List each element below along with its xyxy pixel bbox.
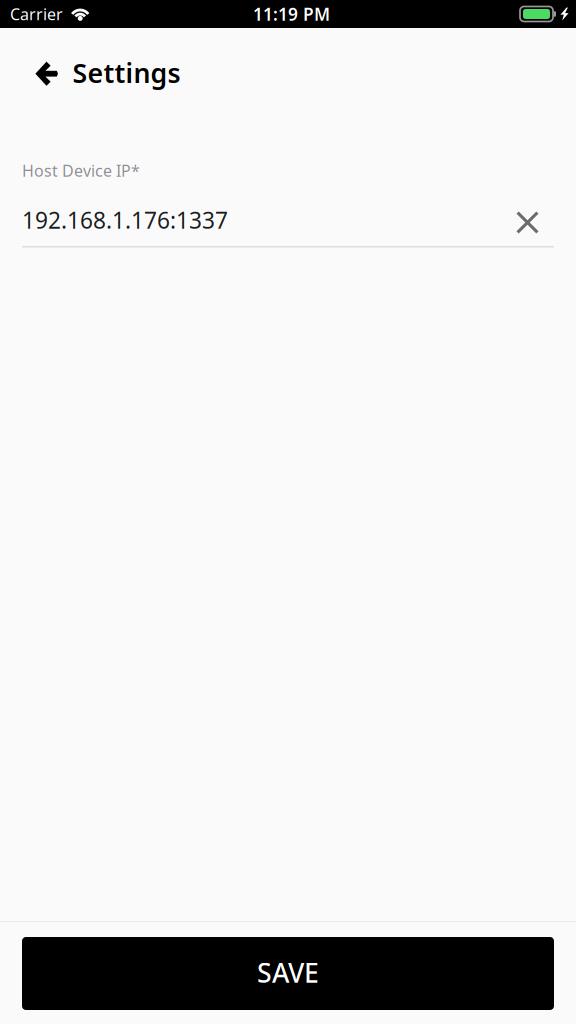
staticText: SAVE [257,955,319,990]
button[interactable]: Settings [28,48,187,99]
staticText: Host Device IP* [22,160,140,181]
button[interactable]: Clear text [506,201,549,244]
button[interactable]: SAVE [22,937,554,1010]
staticText: 11:19 PM [253,2,330,25]
staticText: Carrier [10,3,63,25]
staticText: Settings [72,55,180,90]
staticText: 192.168.1.176:1337 [22,205,228,235]
